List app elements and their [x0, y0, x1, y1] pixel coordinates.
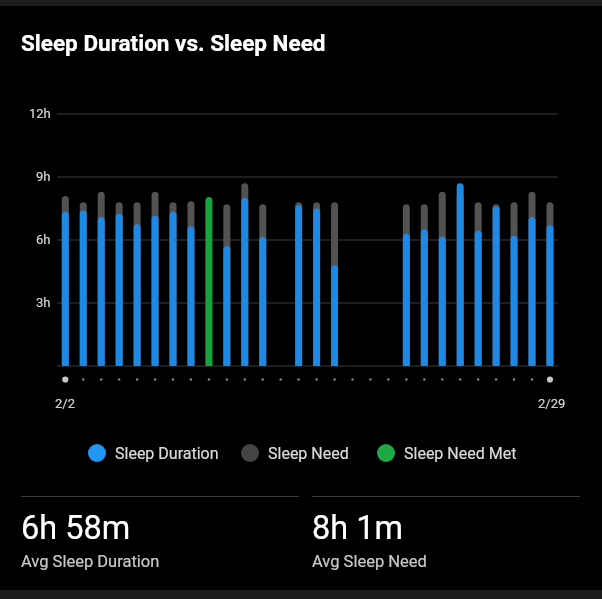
- staticText: 12h: [29, 106, 51, 121]
- staticText: Sleep Duration vs. Sleep Need: [21, 30, 326, 56]
- button[interactable]: Sleep Need Met: [377, 441, 517, 465]
- button[interactable]: 8h 1m: [312, 509, 580, 579]
- button[interactable]: Sleep Duration: [88, 441, 219, 465]
- button[interactable]: Sleep Need: [241, 441, 349, 465]
- button[interactable]: 6h 58m: [21, 509, 291, 579]
- staticText: 9h: [36, 169, 51, 184]
- staticText: Sleep Need Met: [404, 444, 517, 463]
- staticText: 2/2: [55, 396, 75, 411]
- staticText: Avg Sleep Duration: [21, 552, 160, 571]
- staticText: 8h 1m: [312, 509, 403, 547]
- staticText: Avg Sleep Need: [312, 552, 427, 571]
- staticText: Sleep Need: [268, 444, 349, 463]
- staticText: 3h: [36, 295, 51, 310]
- staticText: 2/29: [538, 396, 566, 411]
- staticText: 6h: [36, 232, 51, 247]
- staticText: 6h 58m: [21, 509, 131, 547]
- staticText: Sleep Duration: [115, 444, 219, 463]
